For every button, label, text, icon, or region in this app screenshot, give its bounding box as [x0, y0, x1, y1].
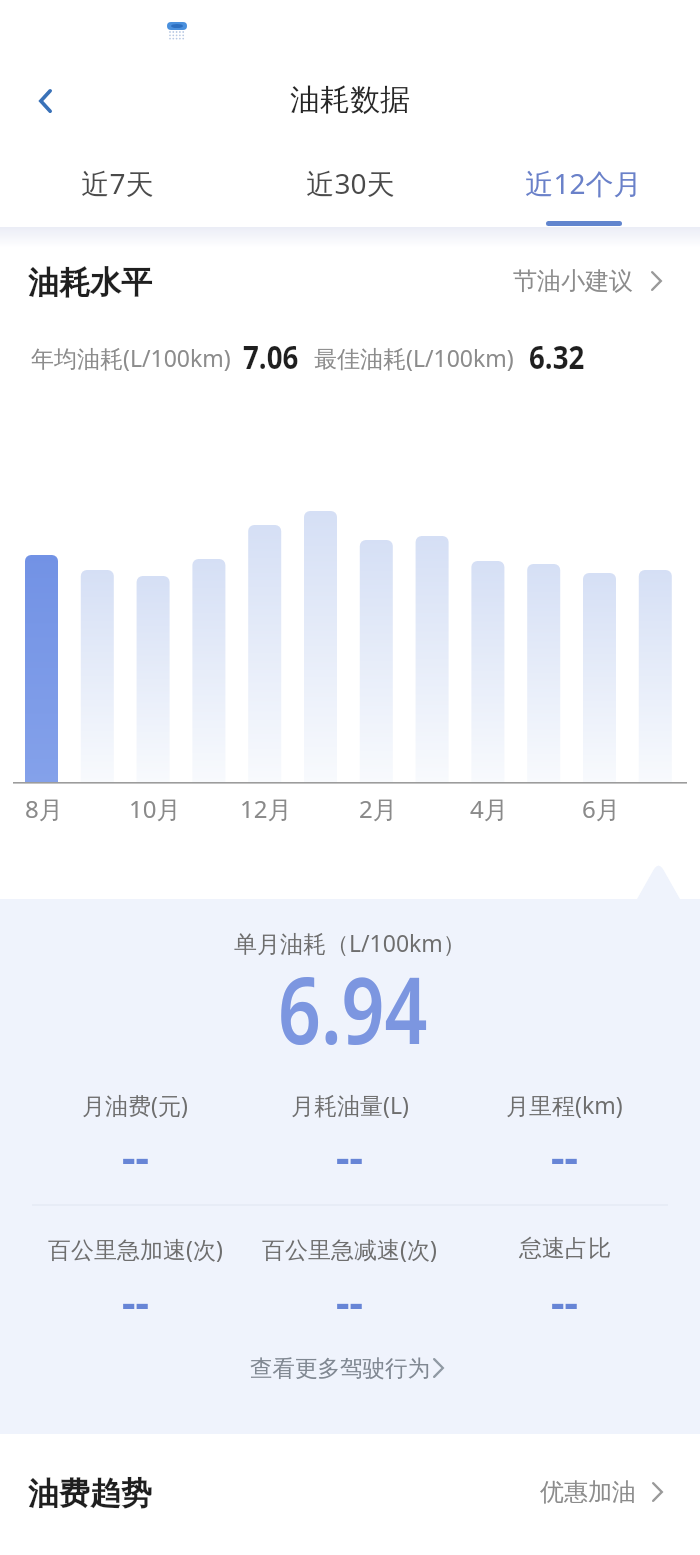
- staticText: --: [551, 1128, 578, 1168]
- button[interactable]: 优惠加油: [480, 1469, 670, 1515]
- button[interactable]: 近7天: [0, 145, 234, 228]
- staticText: 月里程(km): [506, 1089, 623, 1120]
- staticText: 百公里急加速(次): [48, 1233, 223, 1264]
- staticText: 油耗水平: [28, 263, 152, 302]
- staticText: --: [336, 1273, 363, 1313]
- staticText: 节油小建议: [513, 266, 633, 296]
- staticText: 近12个月: [525, 164, 642, 202]
- staticText: 7.06: [243, 334, 298, 374]
- staticText: 年均油耗(L/100km): [31, 342, 231, 373]
- button[interactable]: Back: [20, 76, 70, 126]
- staticText: 12月: [240, 792, 292, 824]
- staticText: 4月: [470, 792, 508, 824]
- staticText: 月耗油量(L): [291, 1089, 409, 1120]
- staticText: 优惠加油: [540, 1477, 636, 1507]
- staticText: 单月油耗（L/100km）: [234, 927, 466, 958]
- staticText: 近7天: [81, 164, 154, 202]
- staticText: --: [122, 1128, 149, 1168]
- staticText: 6.32: [529, 334, 584, 374]
- staticText: --: [336, 1128, 363, 1168]
- button[interactable]: 近12个月: [467, 145, 700, 228]
- button[interactable]: 节油小建议: [480, 258, 670, 304]
- staticText: --: [122, 1273, 149, 1313]
- staticText: 油耗数据: [290, 81, 410, 119]
- staticText: 8月: [25, 792, 63, 824]
- staticText: 查看更多驾驶行为: [250, 1354, 430, 1382]
- staticText: 怠速占比: [519, 1234, 611, 1263]
- staticText: 油费趋势: [28, 1474, 152, 1513]
- staticText: 10月: [129, 792, 181, 824]
- staticText: 6月: [582, 792, 620, 824]
- staticText: 2月: [359, 792, 397, 824]
- button[interactable]: 查看更多驾驶行为: [232, 1346, 472, 1390]
- staticText: 月油费(元): [82, 1089, 188, 1120]
- staticText: 近30天: [306, 164, 395, 202]
- staticText: 6.94: [278, 946, 428, 1046]
- staticText: --: [551, 1273, 578, 1313]
- staticText: 最佳油耗(L/100km): [314, 342, 514, 373]
- button[interactable]: 近30天: [234, 145, 467, 228]
- staticText: 百公里急减速(次): [262, 1233, 437, 1264]
